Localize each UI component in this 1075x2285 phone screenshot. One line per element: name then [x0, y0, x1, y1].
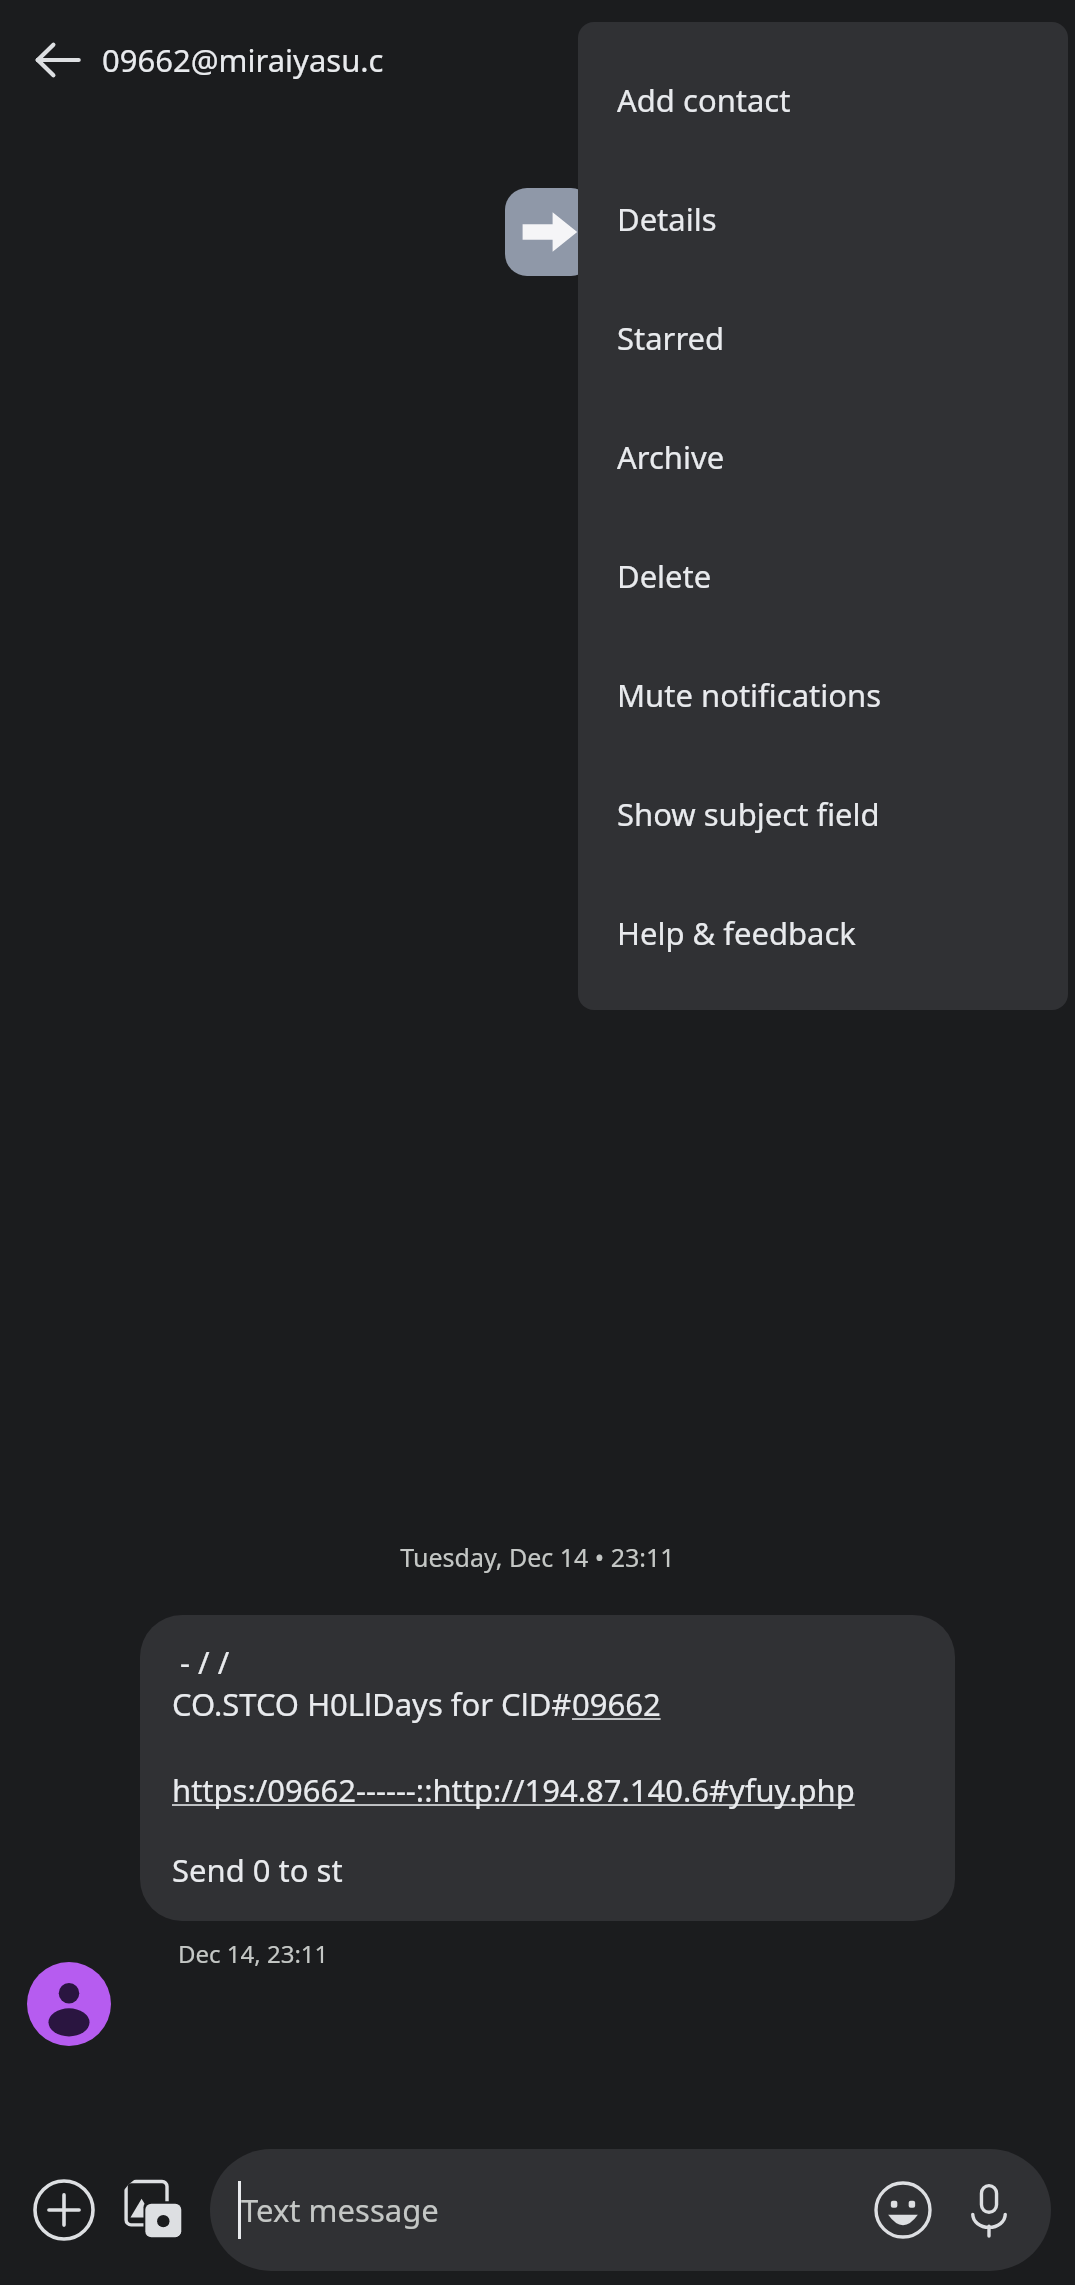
button[interactable]: Delete [578, 516, 1068, 635]
button[interactable]: Emoji [867, 2174, 939, 2246]
staticText: Help & feedback [617, 912, 856, 954]
staticText: CO.STCO H0LlDays for ClD# [172, 1683, 572, 1725]
button[interactable]: Show subject field [578, 754, 1068, 873]
button[interactable]: Gallery [118, 2174, 190, 2246]
button[interactable]: - / / [140, 1615, 955, 1921]
staticText: - / / [172, 1641, 230, 1683]
staticText: Archive [617, 436, 725, 478]
button[interactable]: Archive [578, 397, 1068, 516]
staticText: Starred [617, 317, 725, 359]
staticText: Text message [241, 2189, 867, 2231]
button[interactable]: Voice message [953, 2174, 1025, 2246]
button[interactable]: Details [578, 159, 1068, 278]
staticText: https:/09662------::http://194.87.140.6#… [172, 1769, 855, 1811]
button[interactable]: Help & feedback [578, 873, 1068, 992]
button[interactable]: Contact avatar [27, 1962, 111, 2046]
staticText: Tuesday, Dec 14 • 23:11 [0, 1540, 1075, 1574]
button[interactable]: Add attachment [28, 2174, 100, 2246]
staticText: 09662@miraiyasu.c [102, 39, 384, 81]
button[interactable]: Mute notifications [578, 635, 1068, 754]
button[interactable]: Text message [210, 2149, 1051, 2271]
staticText: 09662 [572, 1683, 661, 1725]
button[interactable]: Starred [578, 278, 1068, 397]
staticText: Dec 14, 23:11 [178, 1937, 329, 1970]
button[interactable]: Back [22, 24, 94, 96]
staticText: Delete [617, 555, 712, 597]
button[interactable]: Add contact [578, 40, 1068, 159]
staticText: Details [617, 198, 717, 240]
staticText: Mute notifications [617, 674, 881, 716]
staticText: Add contact [617, 79, 791, 121]
staticText: Send 0 to st [172, 1849, 343, 1891]
staticText: Show subject field [617, 793, 880, 835]
